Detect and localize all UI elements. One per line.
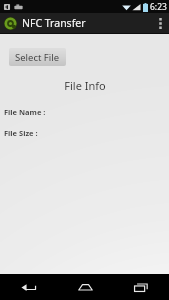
staticText: NFC Transfer [22,16,86,30]
button[interactable]: Home [57,274,113,300]
staticText: Select File [15,51,60,64]
staticText: File Name : [4,107,46,117]
button[interactable]: More options [151,13,169,33]
staticText: File Size : [4,128,38,138]
staticText: 6:23 [150,1,167,13]
staticText: File Info [64,78,106,93]
button[interactable]: Recent apps [113,274,169,300]
button[interactable]: Back [0,274,57,300]
button[interactable]: Select File [9,48,66,66]
